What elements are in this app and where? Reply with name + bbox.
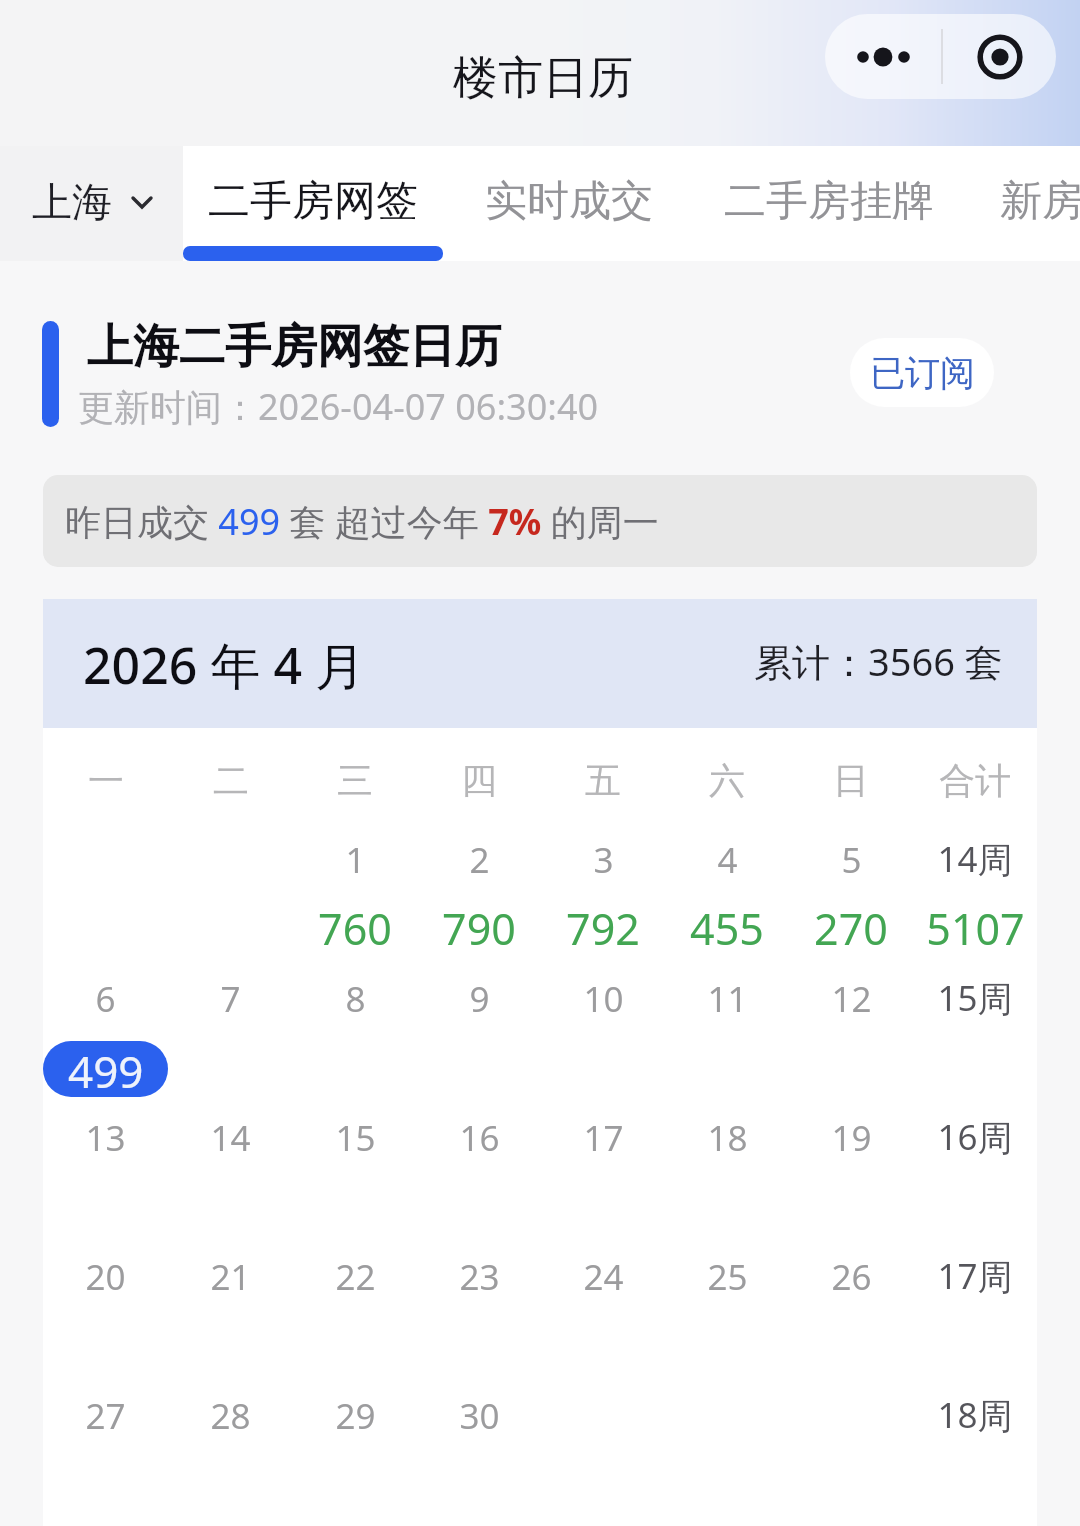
staticText: 五 (585, 758, 621, 803)
button[interactable]: 18周 (913, 1388, 1037, 1526)
button[interactable]: 17周 (913, 1249, 1037, 1388)
staticText: 累计：3566 套 (754, 635, 1003, 687)
button[interactable]: 30 (417, 1388, 541, 1526)
button[interactable]: 23 (417, 1249, 541, 1388)
button[interactable]: 2 (417, 832, 541, 971)
staticText: 455 (690, 899, 764, 958)
button[interactable]: 昨日成交 499 套 超过今年 7% 的周一 (43, 475, 1037, 567)
button[interactable]: More options (825, 14, 941, 99)
staticText: 14周 (937, 835, 1013, 883)
staticText: 二手房网签 (208, 175, 418, 228)
staticText: 11 (707, 975, 748, 1023)
staticText: 24 (583, 1253, 624, 1301)
button[interactable]: 12 (789, 971, 913, 1110)
button[interactable]: 7 (168, 971, 293, 1110)
staticText: 六 (709, 758, 745, 803)
button[interactable]: 13 (43, 1110, 168, 1249)
staticText: 792 (566, 899, 640, 958)
button[interactable]: 27 (43, 1388, 168, 1526)
staticText: 790 (442, 899, 516, 958)
button[interactable]: 11 (665, 971, 789, 1110)
staticText: 9 (469, 975, 490, 1023)
button[interactable]: 6 (43, 971, 168, 1110)
staticText: 12 (831, 975, 872, 1023)
button[interactable]: 19 (789, 1110, 913, 1249)
staticText: 上海二手房网签日历 (87, 318, 501, 376)
staticText: 一 (88, 758, 124, 803)
button[interactable]: 18 (665, 1110, 789, 1249)
button[interactable]: 10 (541, 971, 665, 1110)
staticText: 5107 (926, 899, 1025, 958)
button[interactable]: 8 (293, 971, 417, 1110)
staticText: 29 (335, 1392, 376, 1440)
staticText: 25 (707, 1253, 748, 1301)
staticText: 7 (220, 975, 241, 1023)
staticText: 23 (459, 1253, 500, 1301)
button[interactable]: 20 (43, 1249, 168, 1388)
button[interactable]: 16 (417, 1110, 541, 1249)
staticText: 1 (345, 836, 366, 884)
button[interactable]: 15周 (913, 971, 1037, 1110)
staticText: 二手房挂牌 (724, 175, 934, 228)
staticText: 15 (335, 1114, 376, 1162)
staticText: 2 (469, 836, 490, 884)
button[interactable]: Select city (0, 146, 183, 261)
staticText: 30 (459, 1392, 500, 1440)
staticText: 10 (583, 975, 624, 1023)
staticText: 6 (95, 975, 116, 1023)
button[interactable]: 二手房挂牌 (694, 146, 959, 261)
staticText: 19 (831, 1114, 872, 1162)
staticText: 日 (833, 758, 869, 803)
button[interactable]: 3 (541, 832, 665, 971)
button[interactable]: 28 (168, 1388, 293, 1526)
staticText: 8 (345, 975, 366, 1023)
button[interactable]: Close mini program (943, 14, 1056, 99)
staticText: 新房 (1000, 175, 1080, 228)
button[interactable]: 新房 (970, 146, 1080, 261)
staticText: 14 (210, 1114, 251, 1162)
button[interactable]: 实时成交 (455, 146, 679, 261)
staticText: 二 (213, 758, 249, 803)
button[interactable]: 22 (293, 1249, 417, 1388)
staticText: 5 (841, 836, 862, 884)
staticText: 四 (461, 758, 497, 803)
button[interactable]: 已订阅 (850, 338, 994, 407)
staticText: 4 (717, 836, 738, 884)
button[interactable]: 14 (168, 1110, 293, 1249)
staticText: 18 (707, 1114, 748, 1162)
staticText: 20 (85, 1253, 126, 1301)
staticText: 27 (85, 1392, 126, 1440)
staticText: 17周 (937, 1252, 1013, 1300)
button[interactable]: 21 (168, 1249, 293, 1388)
button[interactable]: 26 (789, 1249, 913, 1388)
button[interactable]: 4 (665, 832, 789, 971)
button[interactable]: 16周 (913, 1110, 1037, 1249)
button[interactable]: 1 (293, 832, 417, 971)
button[interactable]: 二手房网签 (178, 146, 444, 261)
staticText: 270 (814, 899, 888, 958)
staticText: 更新时间：2026-04-07 06:30:40 (78, 382, 599, 431)
button[interactable]: 15 (293, 1110, 417, 1249)
button[interactable]: 14周 (913, 832, 1037, 971)
button[interactable]: 25 (665, 1249, 789, 1388)
button[interactable]: 24 (541, 1249, 665, 1388)
staticText: 28 (210, 1392, 251, 1440)
button[interactable]: 17 (541, 1110, 665, 1249)
staticText: 18周 (937, 1391, 1013, 1439)
staticText: 合计 (939, 758, 1011, 803)
button[interactable]: 29 (293, 1388, 417, 1526)
button[interactable]: 5 (789, 832, 913, 971)
staticText: 26 (831, 1253, 872, 1301)
staticText: 三 (337, 758, 373, 803)
staticText: 21 (210, 1253, 251, 1301)
staticText: 楼市日历 (453, 50, 633, 107)
staticText: 22 (335, 1253, 376, 1301)
staticText: 17 (583, 1114, 624, 1162)
staticText: 16周 (937, 1113, 1013, 1161)
button[interactable]: 9 (417, 971, 541, 1110)
